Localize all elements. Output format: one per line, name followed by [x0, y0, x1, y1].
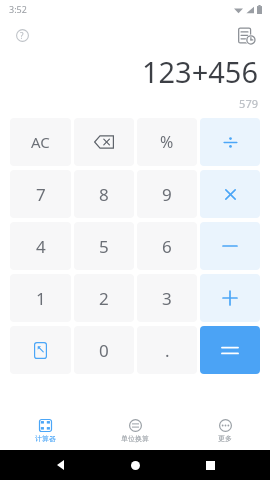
- staticText: 单位换算: [121, 434, 149, 443]
- staticText: 1: [36, 287, 46, 310]
- button[interactable]: 2: [74, 274, 134, 322]
- button[interactable]: 4: [10, 222, 71, 270]
- button[interactable]: 更多: [180, 412, 270, 450]
- staticText: 3:52: [9, 3, 27, 15]
- button[interactable]: 9: [137, 170, 197, 218]
- button[interactable]: 5: [74, 222, 134, 270]
- staticText: 2: [99, 287, 109, 310]
- staticText: 7: [36, 183, 46, 206]
- button[interactable]: 7: [10, 170, 71, 218]
- staticText: 4: [36, 235, 46, 258]
- staticText: %: [160, 131, 174, 153]
- staticText: ?: [20, 30, 24, 41]
- staticText: .: [165, 339, 170, 362]
- button[interactable]: Back: [47, 451, 75, 479]
- staticText: 3: [162, 287, 172, 310]
- button[interactable]: AC: [10, 118, 71, 166]
- staticText: 579: [239, 96, 258, 111]
- staticText: 5: [99, 235, 109, 258]
- button[interactable]: 3: [137, 274, 197, 322]
- button[interactable]: Scientific mode: [10, 326, 71, 374]
- button[interactable]: .: [137, 326, 197, 374]
- button[interactable]: Equals: [200, 326, 260, 374]
- button[interactable]: Divide: [200, 118, 260, 166]
- staticText: 8: [99, 183, 109, 206]
- button[interactable]: %: [137, 118, 197, 166]
- button[interactable]: 计算器: [0, 412, 90, 450]
- button[interactable]: Recents: [196, 451, 224, 479]
- button[interactable]: Multiply: [200, 170, 260, 218]
- staticText: 123+456: [141, 52, 258, 91]
- staticText: 计算器: [35, 434, 56, 443]
- button[interactable]: Backspace: [74, 118, 134, 166]
- button[interactable]: History: [232, 21, 260, 49]
- button[interactable]: 单位换算: [90, 412, 180, 450]
- staticText: 9: [162, 183, 172, 206]
- button[interactable]: Plus: [200, 274, 260, 322]
- button[interactable]: Help: [9, 22, 35, 48]
- staticText: AC: [31, 132, 50, 152]
- button[interactable]: 8: [74, 170, 134, 218]
- button[interactable]: 1: [10, 274, 71, 322]
- button[interactable]: 6: [137, 222, 197, 270]
- button[interactable]: 0: [74, 326, 134, 374]
- button[interactable]: Minus: [200, 222, 260, 270]
- staticText: 更多: [218, 434, 232, 443]
- staticText: 6: [162, 235, 172, 258]
- staticText: 0: [99, 339, 109, 362]
- button[interactable]: Home: [121, 451, 149, 479]
